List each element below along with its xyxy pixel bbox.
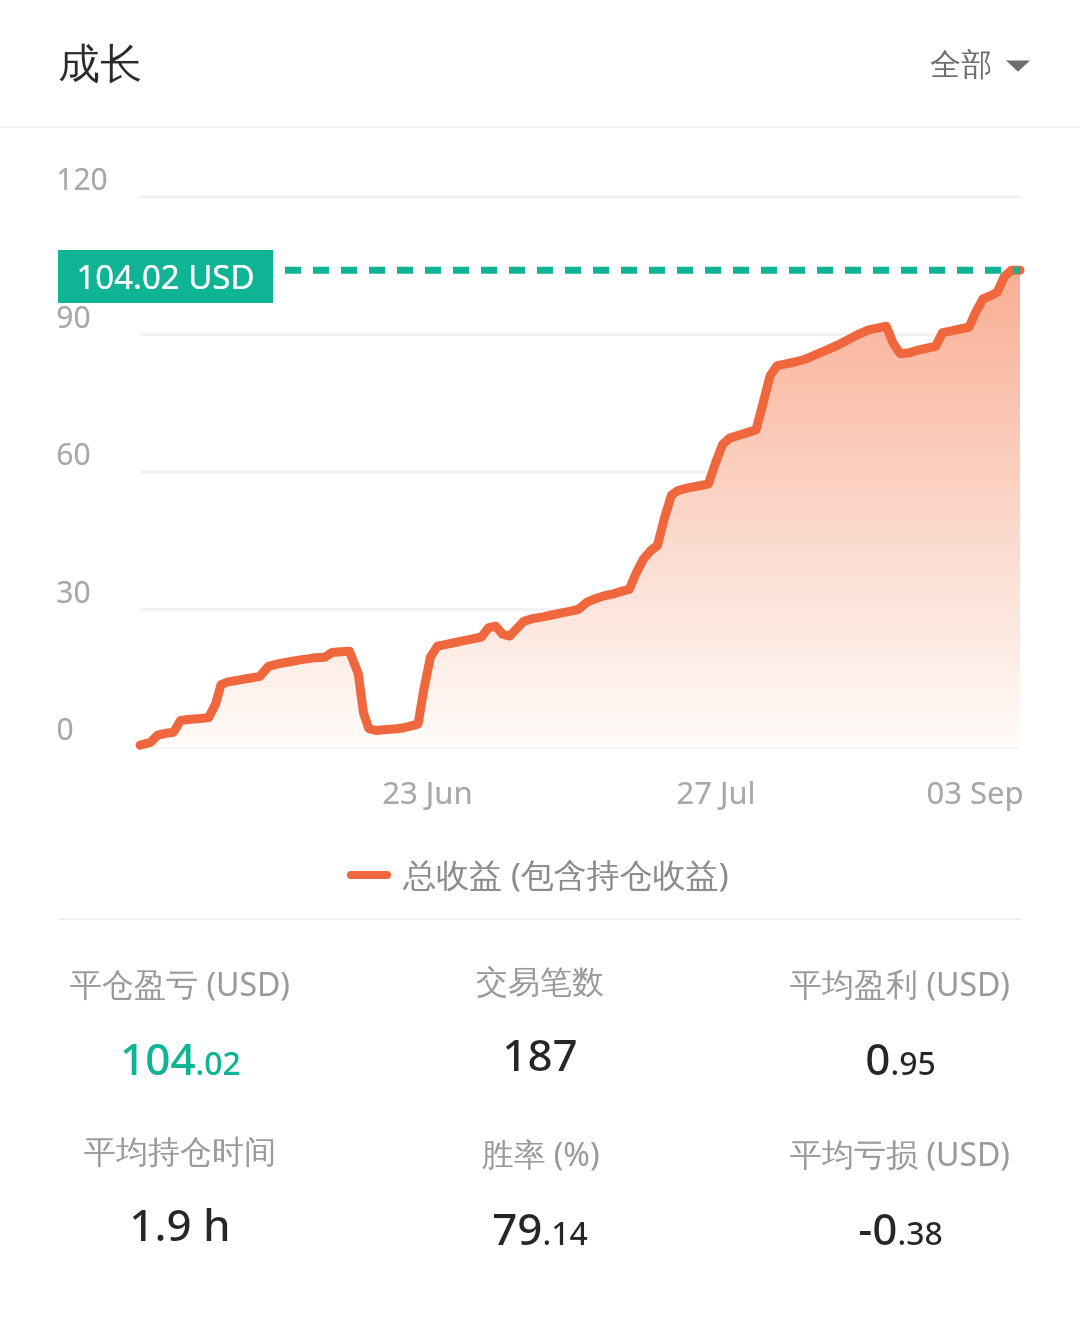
button[interactable]: 平均持仓时间 xyxy=(0,1128,360,1258)
staticText: 平仓盈亏 (USD) xyxy=(70,962,290,1006)
staticText: 0.95 xyxy=(865,1028,936,1088)
staticText: 成长 xyxy=(58,38,142,91)
staticText: 27 Jul xyxy=(676,771,756,813)
button[interactable]: 平均盈利 (USD) xyxy=(720,958,1080,1092)
button[interactable]: 全部 xyxy=(922,35,1038,94)
button[interactable]: 胜率 (%) xyxy=(360,1128,720,1262)
staticText: 90 xyxy=(56,296,91,337)
staticText: 平均亏损 (USD) xyxy=(790,1132,1010,1176)
button[interactable]: 平仓盈亏 (USD) xyxy=(0,958,360,1092)
staticText: 30 xyxy=(56,571,91,612)
staticText: 总收益 (包含持仓收益) xyxy=(403,852,729,897)
staticText: 79.14 xyxy=(492,1198,588,1258)
button[interactable]: 交易笔数 xyxy=(360,958,720,1088)
staticText: 03 Sep xyxy=(926,771,1024,813)
staticText: -0.38 xyxy=(858,1198,943,1258)
staticText: 平均盈利 (USD) xyxy=(790,962,1010,1006)
staticText: 104.02 xyxy=(120,1028,241,1088)
staticText: 全部 xyxy=(930,45,992,84)
button[interactable]: 平均亏损 (USD) xyxy=(720,1128,1080,1262)
staticText: 60 xyxy=(56,433,91,474)
staticText: 胜率 (%) xyxy=(481,1132,600,1176)
staticText: 0 xyxy=(56,708,74,749)
staticText: 交易笔数 xyxy=(476,962,604,1002)
staticText: 23 Jun xyxy=(382,771,473,813)
staticText: 104.02 USD xyxy=(76,254,255,299)
staticText: 187 xyxy=(502,1024,578,1084)
staticText: 120 xyxy=(56,158,108,199)
staticText: 平均持仓时间 xyxy=(84,1132,276,1172)
other: Filter xyxy=(1006,57,1030,73)
staticText: 1.9 h xyxy=(129,1194,231,1254)
